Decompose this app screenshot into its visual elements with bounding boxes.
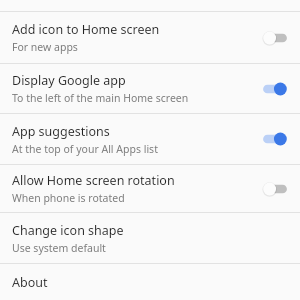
staticText: At the top of your All Apps list [12, 142, 158, 156]
button[interactable]: Allow Home screen rotation [0, 165, 300, 212]
staticText: Add icon to Home screen [12, 21, 160, 38]
staticText: Change icon shape [12, 222, 124, 239]
staticText: When phone is rotated [12, 191, 125, 205]
staticText: Use system default [12, 241, 106, 255]
staticText: To the left of the main Home screen [12, 91, 189, 105]
staticText: Display Google app [12, 72, 126, 89]
button[interactable]: Add icon to Home screen, off [258, 27, 292, 49]
button[interactable]: Display Google app [0, 64, 300, 113]
button[interactable]: App suggestions, on [258, 128, 292, 150]
staticText: About [12, 274, 48, 291]
staticText: For new apps [12, 40, 78, 54]
button[interactable]: App suggestions [0, 114, 300, 164]
staticText: App suggestions [12, 123, 110, 140]
button[interactable]: About [0, 264, 300, 300]
button[interactable]: Add icon to Home screen [0, 12, 300, 63]
button[interactable]: Allow Home screen rotation, off [258, 178, 292, 200]
button[interactable]: Change icon shape [0, 213, 300, 263]
button[interactable]: Display Google app, on [258, 78, 292, 100]
staticText: Allow Home screen rotation [12, 172, 175, 189]
